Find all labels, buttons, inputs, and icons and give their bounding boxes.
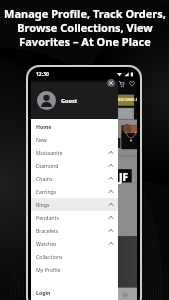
staticText: Bracelets <box>36 227 59 234</box>
staticText: Home <box>36 123 52 130</box>
staticText: BECOME A MEMBER <box>118 97 137 102</box>
button[interactable]: Rings <box>31 198 118 211</box>
staticText: Collections <box>36 253 63 260</box>
staticText: Moissanite <box>36 149 63 156</box>
staticText: Rings <box>36 201 50 208</box>
button[interactable]: Bracelets <box>31 224 118 237</box>
button[interactable]: Home <box>31 120 118 133</box>
staticText: Manage Profile, Track Orders, Browse Col… <box>4 6 166 49</box>
button[interactable]: Favorites <box>127 79 136 88</box>
staticText: Chains <box>36 175 53 182</box>
button[interactable]: Diamond <box>31 159 118 172</box>
button[interactable]: Chains <box>31 172 118 185</box>
staticText: My Profile <box>36 266 61 273</box>
button[interactable]: Collections <box>31 250 118 263</box>
staticText: Earrings <box>36 188 57 195</box>
button[interactable]: New <box>31 133 118 146</box>
staticText: 12:30 <box>36 71 49 78</box>
button[interactable]: Login <box>31 286 118 299</box>
staticText: Grand Opening <box>119 153 137 158</box>
staticText: JF <box>119 170 128 184</box>
staticText: Pendants <box>36 214 59 221</box>
button[interactable]: Shopping cart <box>117 79 126 88</box>
button[interactable]: Earrings <box>31 185 118 198</box>
button[interactable]: Guest <box>31 82 118 119</box>
button[interactable]: Pendants <box>31 211 118 224</box>
staticText: Guest <box>61 97 78 105</box>
staticText: Watches <box>36 240 57 247</box>
button[interactable]: Close menu <box>107 79 115 87</box>
staticText: New <box>36 136 47 143</box>
button[interactable]: Moissanite <box>31 146 118 159</box>
staticText: Diamond <box>36 162 59 169</box>
staticText: Login <box>36 289 51 296</box>
button[interactable]: My Profile <box>31 263 118 276</box>
button[interactable]: Watches <box>31 237 118 250</box>
